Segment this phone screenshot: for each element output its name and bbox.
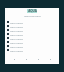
staticText: Item name — [10, 33, 23, 36]
staticText: Item name — [10, 21, 23, 24]
button[interactable]: Item name — [5, 48, 59, 52]
button[interactable]: Item name — [5, 24, 59, 28]
staticText: Item name — [10, 45, 23, 48]
button[interactable]: Item name — [5, 20, 59, 24]
staticText: Item name — [10, 41, 23, 44]
staticText: Item name — [10, 37, 23, 40]
button[interactable]: Tab — [23, 56, 29, 62]
button[interactable]: Item name — [5, 36, 59, 40]
button[interactable]: Tab — [11, 56, 17, 62]
button[interactable]: Item name — [5, 32, 59, 36]
button[interactable]: Tab — [35, 56, 41, 62]
staticText: AQUA — [28, 9, 37, 13]
button[interactable]: Item name — [5, 44, 59, 48]
button[interactable]: Item name — [5, 40, 59, 44]
staticText: Item name — [10, 25, 23, 28]
button[interactable]: Tab — [47, 56, 53, 62]
staticText: Item name — [10, 49, 23, 52]
button[interactable]: Item name — [5, 28, 59, 32]
staticText: welcome back — [24, 14, 41, 17]
staticText: Item name — [10, 29, 23, 32]
